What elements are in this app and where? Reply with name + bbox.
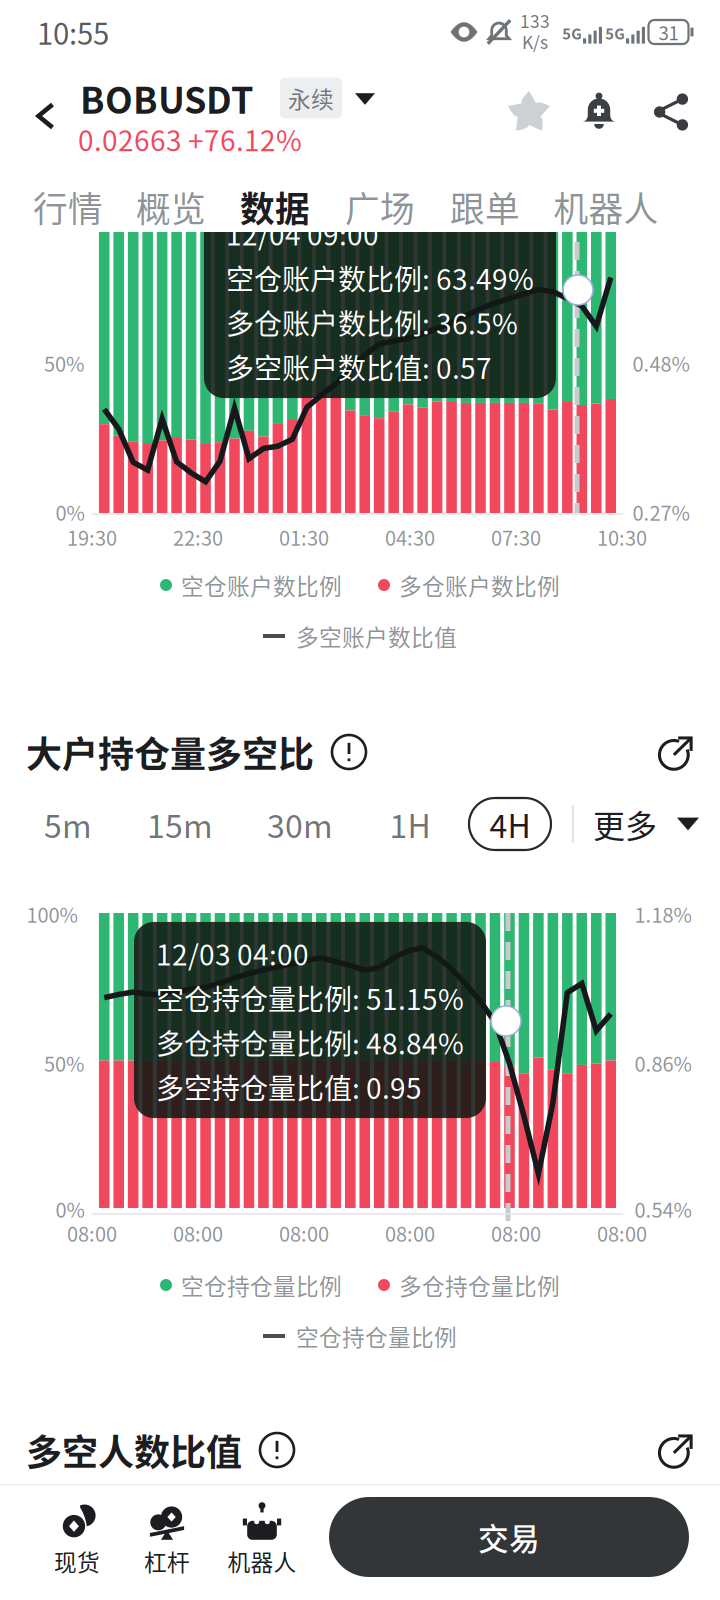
staticText: 机器人 xyxy=(553,182,658,232)
staticText: 多仓账户数比例 xyxy=(399,569,560,601)
staticText: 08:00 xyxy=(491,1218,541,1247)
staticText: 大户持仓量多空比 xyxy=(26,726,314,778)
staticText: 数据 xyxy=(240,182,310,232)
button[interactable]: 机器人 xyxy=(214,1502,310,1578)
staticText: 0.02663 xyxy=(78,119,182,159)
staticText: 多空人数比值 xyxy=(26,1424,242,1476)
button[interactable]: 5m xyxy=(20,798,116,850)
staticText: 5G xyxy=(562,22,582,44)
staticText: 30m xyxy=(267,801,333,847)
button[interactable]: Share xyxy=(652,93,690,131)
staticText: 50% xyxy=(44,348,84,377)
staticText: 空仓账户数比例: 63.49% xyxy=(226,257,534,298)
staticText: 08:00 xyxy=(279,1218,329,1247)
staticText: K/s xyxy=(522,29,548,54)
staticText: 10:55 xyxy=(37,11,109,53)
staticText: 08:00 xyxy=(173,1218,223,1247)
button[interactable]: 行情 xyxy=(33,175,103,239)
staticText: 多空账户数比值: 0.57 xyxy=(226,346,492,387)
button[interactable]: 概览 xyxy=(136,175,206,239)
staticText: 5G xyxy=(605,22,625,44)
button[interactable]: 4H xyxy=(469,798,551,850)
button[interactable]: Expand chart xyxy=(658,734,694,770)
button[interactable]: Price alert xyxy=(579,92,619,132)
staticText: 4H xyxy=(489,801,530,847)
staticText: 133 xyxy=(520,8,550,33)
staticText: 12/03 04:00 xyxy=(156,933,309,973)
staticText: 04:30 xyxy=(385,522,435,551)
staticText: 50% xyxy=(44,1048,84,1077)
staticText: 12/04 09:00 xyxy=(226,213,379,253)
button[interactable]: 更多 xyxy=(593,798,699,850)
staticText: 现货 xyxy=(54,1545,100,1577)
staticText: 0.27% xyxy=(632,497,689,526)
staticText: 0% xyxy=(55,497,84,526)
button[interactable]: Favorite xyxy=(506,89,552,135)
staticText: 多仓账户数比例: 36.5% xyxy=(226,302,518,342)
button[interactable]: Expand chart xyxy=(658,1432,694,1468)
staticText: 多空持仓量比值: 0.95 xyxy=(156,1066,422,1107)
staticText: 永续 xyxy=(288,82,334,114)
staticText: 19:30 xyxy=(67,522,117,551)
staticText: 机器人 xyxy=(227,1545,296,1577)
staticText: 07:30 xyxy=(491,522,541,551)
staticText: 15m xyxy=(147,801,213,847)
staticText: 31 xyxy=(658,18,678,45)
button[interactable]: 现货 xyxy=(29,1502,125,1578)
button[interactable]: Back xyxy=(22,88,68,144)
staticText: 1H xyxy=(389,801,430,847)
staticText: 行情 xyxy=(33,182,103,232)
staticText: 空仓账户数比例 xyxy=(181,569,342,601)
staticText: 0.54% xyxy=(634,1194,691,1223)
button[interactable]: 广场 xyxy=(345,175,415,239)
staticText: 杠杆 xyxy=(144,1545,190,1577)
staticText: 0% xyxy=(55,1194,84,1223)
staticText: 空仓持仓量比例 xyxy=(296,1320,457,1352)
staticText: 01:30 xyxy=(279,522,329,551)
staticText: 空仓持仓量比例: 51.15% xyxy=(156,977,464,1018)
staticText: 22:30 xyxy=(173,522,223,551)
staticText: 空仓持仓量比例 xyxy=(181,1269,342,1301)
button[interactable]: 跟单 xyxy=(450,175,520,239)
button[interactable]: 交易 xyxy=(329,1497,689,1577)
button[interactable]: 杠杆 xyxy=(119,1502,215,1578)
staticText: 概览 xyxy=(136,182,206,232)
staticText: 广场 xyxy=(345,182,415,232)
staticText: +76.12% xyxy=(188,119,302,159)
button[interactable]: 15m xyxy=(132,798,228,850)
staticText: 多空账户数比值 xyxy=(296,620,457,652)
button[interactable]: 数据 xyxy=(240,175,310,239)
staticText: 跟单 xyxy=(450,182,520,232)
staticText: 08:00 xyxy=(597,1218,647,1247)
button[interactable]: Contract type xyxy=(355,93,375,105)
staticText: 08:00 xyxy=(385,1218,435,1247)
staticText: BOBUSDT xyxy=(80,72,254,124)
staticText: 交易 xyxy=(478,1515,540,1559)
staticText: 多仓持仓量比例: 48.84% xyxy=(156,1022,464,1062)
button[interactable]: 30m xyxy=(252,798,348,850)
staticText: 08:00 xyxy=(67,1218,117,1247)
staticText: 0.86% xyxy=(634,1048,691,1077)
staticText: 更多 xyxy=(593,801,657,847)
button[interactable]: 1H xyxy=(362,798,458,850)
staticText: 100% xyxy=(26,899,77,928)
button[interactable]: 机器人 xyxy=(553,175,658,239)
staticText: 5m xyxy=(44,801,92,847)
staticText: 0.48% xyxy=(632,348,689,377)
staticText: 10:30 xyxy=(597,522,647,551)
staticText: 多仓持仓量比例 xyxy=(399,1269,560,1301)
staticText: 1.18% xyxy=(634,899,691,928)
